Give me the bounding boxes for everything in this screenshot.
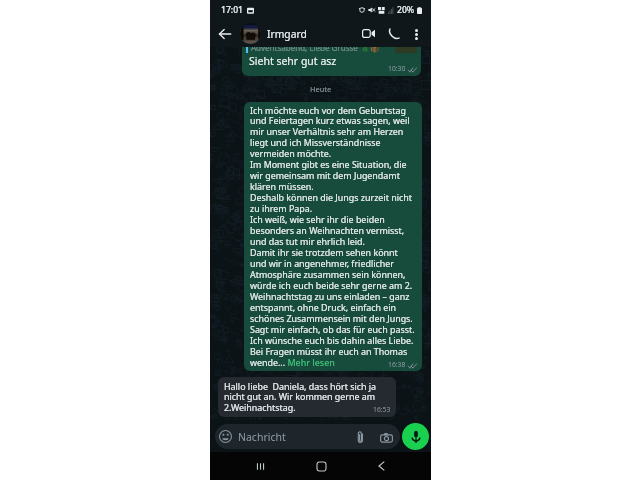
staticText: Ich möchte euch vor dem Geburtstag und F…	[250, 104, 415, 369]
staticText: Irmgard	[267, 27, 307, 41]
button[interactable]: Home	[310, 455, 332, 477]
button[interactable]: Hallo liebe Daniela, dass hört sich ja n…	[218, 377, 396, 417]
staticText: 17:01	[221, 4, 244, 16]
button[interactable]: Record voice message	[402, 423, 429, 450]
staticText: 16:38	[388, 360, 406, 369]
staticText: Sieht sehr gut asz	[249, 54, 337, 68]
button[interactable]: More options	[409, 27, 423, 41]
button[interactable]: Video call	[360, 25, 377, 42]
button[interactable]: Voice call	[385, 25, 402, 42]
button[interactable]: Attach file	[354, 430, 367, 443]
staticText: 20%	[397, 4, 415, 16]
button[interactable]: Back	[217, 26, 233, 42]
button[interactable]: Recent apps	[249, 455, 271, 477]
staticText: 10:30	[388, 64, 406, 73]
staticText: Hallo liebe Daniela, dass hört sich ja n…	[224, 380, 377, 414]
button[interactable]: Nachricht	[215, 424, 400, 449]
staticText: Adventsabend, Liebe Grüsse 🎄🎁	[251, 42, 380, 53]
staticText: Heute	[310, 84, 332, 94]
button[interactable]: Camera	[379, 430, 393, 444]
button[interactable]: Adventsabend, Liebe Grüsse 🎄🎁	[242, 31, 421, 76]
button[interactable]: Ich möchte euch vor dem Geburtstag und F…	[244, 102, 422, 371]
button[interactable]: Back	[370, 455, 392, 477]
staticText: 16:53	[373, 405, 391, 414]
staticText: Nachricht	[238, 430, 286, 444]
